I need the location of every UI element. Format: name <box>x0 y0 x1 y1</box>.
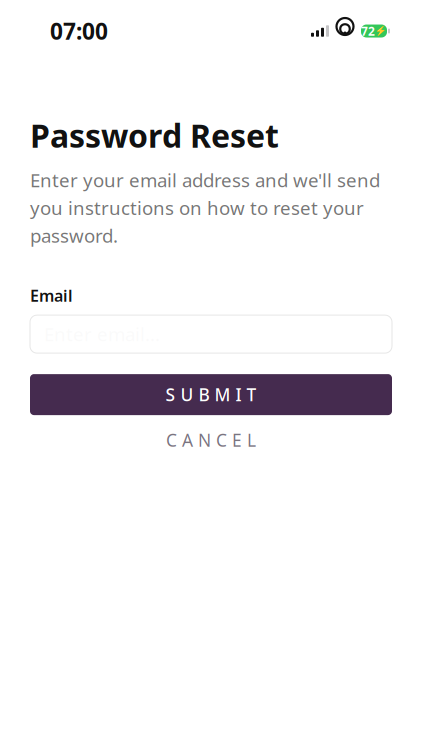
staticText: ⚡ <box>375 26 387 36</box>
button[interactable]: Enter email... <box>30 315 392 353</box>
staticText: C A N C E L <box>166 429 256 452</box>
staticText: Email <box>30 285 73 306</box>
button[interactable]: C A N C E L <box>30 423 392 457</box>
staticText: 72 <box>361 23 375 39</box>
button[interactable]: S U B M I T <box>30 374 392 415</box>
staticText: S U B M I T <box>165 383 256 406</box>
staticText: 07:00 <box>50 16 108 46</box>
staticText: Enter your email address and we'll send … <box>30 167 380 248</box>
staticText: Password Reset <box>30 114 279 156</box>
